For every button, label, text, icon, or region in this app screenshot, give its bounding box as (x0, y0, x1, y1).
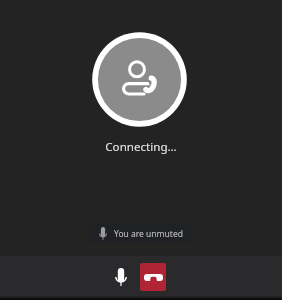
button[interactable]: Mute microphone (106, 263, 135, 292)
staticText: Connecting… (105, 139, 177, 155)
button[interactable]: End call (140, 263, 166, 291)
button[interactable]: You are unmuted (89, 224, 191, 243)
staticText: You are unmuted (114, 228, 183, 240)
